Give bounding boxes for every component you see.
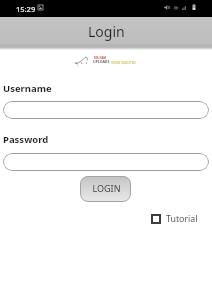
button[interactable]: Tutorial xyxy=(151,213,198,225)
staticText: BIG NAM xyxy=(94,56,107,60)
other: Battery xyxy=(192,4,196,10)
staticText: UPLOADS xyxy=(93,59,110,64)
other: Company logo xyxy=(74,56,89,68)
button[interactable]: LOGIN xyxy=(80,176,131,202)
button[interactable]: Password input xyxy=(3,153,209,171)
staticText: YOUR SOLUTIO xyxy=(111,60,136,64)
other: Sound muted xyxy=(164,5,170,10)
staticText: 15:29 xyxy=(16,4,36,14)
staticText: Tutorial xyxy=(166,213,198,225)
staticText: LOGIN xyxy=(92,182,121,194)
other: Wi-Fi xyxy=(173,5,179,10)
staticText: Username xyxy=(3,82,52,95)
other: Mobile signal xyxy=(182,5,186,10)
staticText: Password xyxy=(3,133,49,146)
other: Screenshot notification xyxy=(38,5,43,10)
staticText: Login xyxy=(88,22,125,41)
button[interactable]: Username input xyxy=(3,101,209,119)
